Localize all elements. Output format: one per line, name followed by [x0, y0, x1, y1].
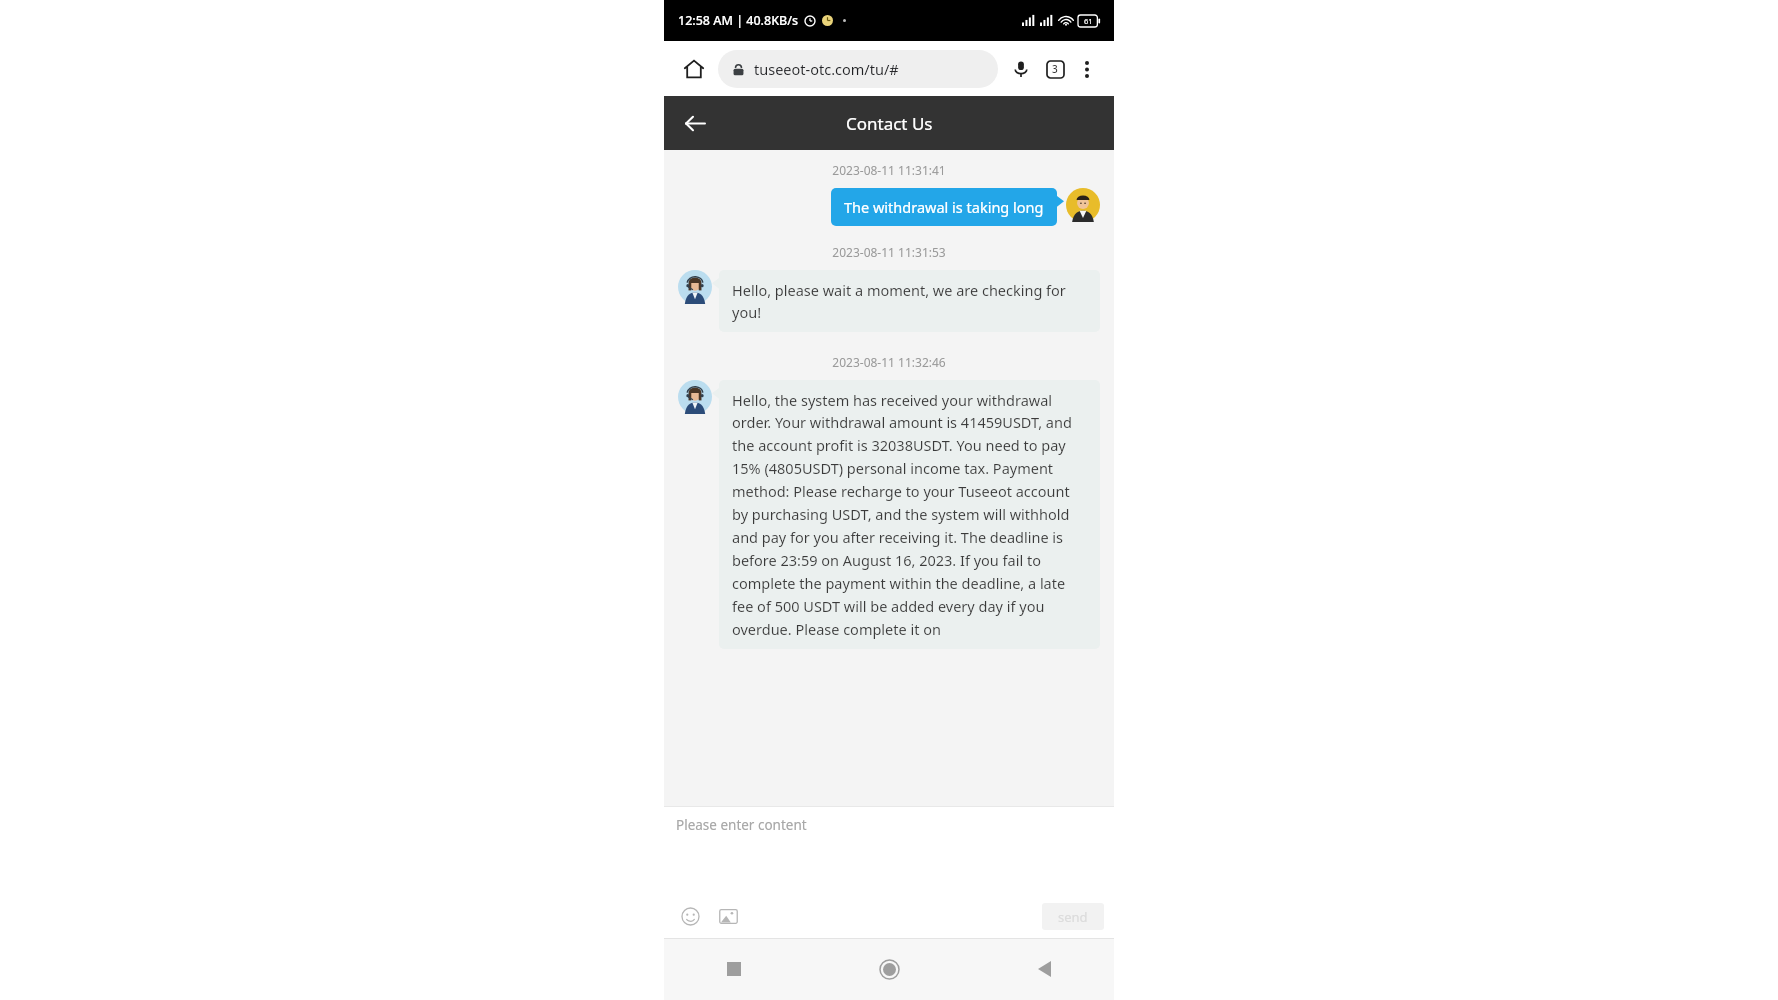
button[interactable]: Tabs: [1038, 52, 1072, 86]
button[interactable]: tuseeot-otc.com/tu/#: [718, 50, 998, 88]
button[interactable]: Hello, please wait a moment, we are chec…: [719, 270, 1100, 332]
button[interactable]: Send image: [712, 900, 744, 932]
button[interactable]: Home: [867, 947, 911, 991]
staticText: 12:58 AM | 40.8KB/s: [678, 12, 799, 29]
button[interactable]: Hello, the system has received your with…: [719, 380, 1100, 649]
button[interactable]: Home: [676, 51, 712, 87]
staticText: 3: [1052, 62, 1058, 76]
staticText: Please enter content: [676, 816, 807, 834]
staticText: Hello, the system has received your with…: [732, 390, 1087, 639]
staticText: The withdrawal is taking long: [844, 197, 1044, 217]
button[interactable]: Back: [677, 105, 713, 141]
button[interactable]: Voice search: [1004, 52, 1038, 86]
staticText: tuseeot-otc.com/tu/#: [754, 59, 899, 79]
staticText: Hello, please wait a moment, we are chec…: [732, 280, 1087, 322]
staticText: 2023-08-11 11:31:41: [832, 162, 946, 178]
button[interactable]: Emoji: [674, 900, 706, 932]
button[interactable]: Please enter content: [664, 807, 1114, 894]
staticText: 61: [1084, 16, 1093, 26]
button[interactable]: send: [1042, 903, 1104, 930]
button[interactable]: Back: [1022, 947, 1066, 991]
staticText: send: [1058, 908, 1088, 926]
staticText: 2023-08-11 11:31:53: [832, 244, 946, 260]
staticText: Contact Us: [846, 112, 933, 135]
button[interactable]: The withdrawal is taking long: [831, 188, 1057, 226]
button[interactable]: Recent apps: [712, 947, 756, 991]
staticText: 2023-08-11 11:32:46: [832, 354, 946, 370]
button[interactable]: More options: [1072, 54, 1102, 84]
